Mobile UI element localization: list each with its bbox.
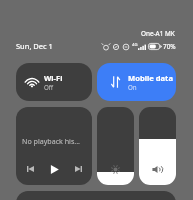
button[interactable]: Previous — [24, 163, 36, 175]
staticText: Sun, Dec 1 — [16, 41, 53, 51]
staticText: On — [128, 83, 137, 91]
staticText: 4G — [132, 42, 138, 48]
button[interactable]: Wi-Fi — [16, 63, 92, 101]
button[interactable]: Mobile data — [97, 63, 176, 101]
staticText: Off — [44, 83, 54, 91]
button[interactable]: Play — [48, 163, 60, 175]
button[interactable]: Next — [72, 163, 84, 175]
button[interactable]: Brightness — [97, 107, 134, 185]
button[interactable]: Volume — [139, 107, 176, 185]
button[interactable] — [16, 191, 176, 200]
staticText: Wi-Fi — [44, 73, 63, 83]
other: Wi-Fi — [24, 74, 40, 90]
staticText: 70% — [163, 42, 176, 51]
other: Mobile data — [111, 76, 120, 88]
staticText: Mobile data — [128, 73, 173, 83]
staticText: One-A1 MK — [141, 29, 175, 38]
staticText: No playback his... — [22, 136, 81, 146]
